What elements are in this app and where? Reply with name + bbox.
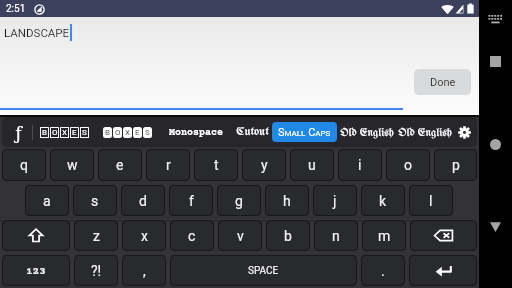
staticText: t [214,157,219,173]
staticText: k [379,193,387,209]
button[interactable]: Shift [3,221,69,250]
staticText: X [62,128,68,137]
staticText: O [52,128,58,137]
staticText: d [139,193,147,209]
button[interactable]: f [170,186,212,215]
staticText: LANDSCAPE [4,26,70,39]
staticText: B [42,128,47,137]
button[interactable]: Settings [451,117,477,147]
staticText: w [67,157,78,173]
button[interactable]: m [363,221,405,250]
staticText: r [166,157,171,173]
button[interactable]: b [267,221,309,250]
staticText: f [189,193,194,209]
staticText: u [308,157,316,173]
staticText: E [72,128,77,137]
button[interactable]: SPACE [171,256,356,285]
button[interactable]: z [75,221,117,250]
button[interactable]: k [362,186,404,215]
button[interactable]: ?! [75,256,117,285]
button[interactable]: o [387,150,429,180]
button[interactable]: l [410,186,452,215]
button[interactable]: , [123,256,165,285]
button[interactable]: h [266,186,308,215]
staticText: X [125,128,131,137]
staticText: q [20,157,28,173]
staticText: a [43,193,51,209]
button[interactable]: u [291,150,333,180]
staticText: y [261,157,268,173]
button[interactable]: a [26,186,68,215]
button[interactable]: Done [414,69,471,95]
button[interactable]: y [243,150,285,180]
button[interactable]: p [435,150,476,180]
staticText: g [235,193,243,209]
staticText: s [91,193,99,209]
button[interactable]: Cutout [230,122,275,142]
staticText: b [284,228,292,244]
staticText: Old English [340,127,394,138]
staticText: SMALL CAPS [278,126,331,139]
staticText: ƒ [14,121,22,144]
button[interactable]: r [147,150,189,180]
button[interactable]: t [195,150,237,180]
staticText: i [358,157,362,173]
button[interactable]: Hide keyboard [485,9,506,30]
staticText: n [332,228,340,244]
staticText: Old English [398,127,452,138]
staticText: S [145,128,150,137]
staticText: . [381,263,385,279]
staticText: S [82,128,87,137]
staticText: x [141,228,148,244]
button[interactable]: i [339,150,381,180]
button[interactable]: w [51,150,93,180]
button[interactable]: x [123,221,165,250]
button[interactable]: Recents [484,50,506,72]
button[interactable]: Monospace [164,122,227,142]
button[interactable]: Filled boxes [103,127,153,138]
button[interactable]: e [99,150,141,180]
staticText: B [105,128,110,137]
button[interactable]: v [219,221,261,250]
staticText: 2:51 [6,3,26,15]
staticText: c [188,228,196,244]
staticText: Monospace [169,127,223,138]
button[interactable]: Backspace [411,221,476,250]
staticText: l [429,193,433,209]
staticText: O [115,128,121,137]
button[interactable]: Old English [340,122,394,142]
button[interactable]: SMALL CAPS [272,122,337,142]
staticText: h [283,193,291,209]
staticText: , [143,263,146,279]
staticText: 123 [26,265,46,277]
staticText: z [93,228,100,244]
staticText: o [404,157,412,173]
button[interactable]: Home [484,133,506,155]
staticText: Cutout [236,126,269,138]
button[interactable]: Font list [2,117,34,147]
button[interactable]: j [314,186,356,215]
staticText: SPACE [248,265,279,277]
button[interactable]: Old English [398,122,452,142]
button[interactable]: Outline boxes [40,127,90,138]
staticText: ?! [91,263,102,279]
button[interactable]: . [362,256,404,285]
staticText: v [237,228,244,244]
button[interactable]: s [74,186,116,215]
staticText: p [452,157,460,173]
staticText: Done [430,76,456,89]
button[interactable]: c [171,221,213,250]
button[interactable]: g [218,186,260,215]
button[interactable]: Enter [410,256,476,285]
button[interactable]: q [3,150,45,180]
button[interactable]: Back [484,216,506,238]
staticText: e [116,157,124,173]
staticText: j [333,193,337,209]
staticText: E [135,128,140,137]
button[interactable]: 123 [3,256,69,285]
staticText: m [378,228,391,244]
button[interactable]: n [315,221,357,250]
button[interactable]: d [122,186,164,215]
